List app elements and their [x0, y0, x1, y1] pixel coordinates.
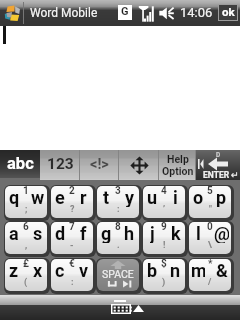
- staticText: ): [162, 277, 166, 288]
- staticText: $: [161, 259, 167, 270]
- staticText: h: [124, 223, 135, 243]
- button[interactable]: c: [51, 259, 93, 291]
- staticText: b: [147, 260, 158, 280]
- staticText: c: [55, 260, 65, 280]
- button[interactable]: z: [5, 259, 47, 291]
- staticText: abc: [7, 154, 34, 173]
- staticText: 9: [161, 222, 167, 233]
- staticText: &: [216, 260, 228, 280]
- staticText: 1: [23, 186, 29, 197]
- staticText: y: [125, 187, 135, 207]
- staticText: m: [191, 260, 205, 280]
- button[interactable]: e: [51, 186, 93, 218]
- button[interactable]: b: [143, 259, 185, 291]
- staticText: e: [55, 187, 65, 207]
- staticText: ok: [222, 5, 235, 18]
- button[interactable]: t: [97, 186, 139, 218]
- button[interactable]: Help: [159, 150, 196, 180]
- staticText: r: [80, 187, 87, 207]
- staticText: x: [33, 260, 43, 280]
- staticText: f: [80, 223, 87, 243]
- staticText: SPACE: [102, 268, 134, 280]
- staticText: n: [170, 260, 181, 280]
- staticText: 123: [47, 155, 74, 173]
- staticText: i: [173, 187, 178, 207]
- staticText: 2: [69, 186, 75, 197]
- staticText: o: [193, 187, 204, 207]
- button[interactable]: u: [143, 186, 185, 218]
- staticText: !: [163, 240, 166, 251]
- staticText: <!>: [90, 156, 109, 173]
- staticText: k: [171, 223, 181, 243]
- staticText: v: [79, 260, 89, 280]
- staticText: 7: [69, 222, 75, 233]
- staticText: 3: [115, 186, 121, 197]
- staticText: £: [23, 259, 29, 270]
- button[interactable]: GPRS: [118, 5, 132, 20]
- staticText: u: [147, 187, 158, 207]
- staticText: /: [208, 277, 212, 288]
- staticText: q: [9, 187, 20, 207]
- staticText: 6: [23, 222, 29, 233]
- staticText: ’: [163, 204, 166, 215]
- button[interactable]: abc: [0, 150, 40, 178]
- button[interactable]: <!>: [80, 150, 119, 180]
- staticText: 0: [207, 222, 213, 233]
- staticText: *: [208, 259, 213, 270]
- staticText: :: [71, 277, 74, 288]
- button[interactable]: a: [5, 222, 47, 254]
- staticText: D: [216, 151, 221, 159]
- button[interactable]: 123: [40, 150, 80, 180]
- staticText: j: [150, 223, 155, 243]
- staticText: w: [31, 187, 45, 207]
- button[interactable]: l: [189, 222, 231, 254]
- button[interactable]: q: [5, 186, 47, 218]
- button[interactable]: Input panel: [111, 299, 131, 315]
- staticText: ?: [70, 204, 75, 215]
- staticText: p: [216, 187, 227, 207]
- button[interactable]: Backspace and Enter: [196, 150, 240, 180]
- staticText: a: [9, 223, 19, 243]
- staticText: ;: [25, 204, 28, 215]
- button[interactable]: g: [97, 222, 139, 254]
- staticText: G: [121, 5, 129, 18]
- button[interactable]: Volume: [159, 7, 176, 20]
- staticText: g: [101, 223, 112, 243]
- staticText: ↵: [231, 169, 239, 180]
- staticText: s: [33, 223, 43, 243]
- staticText: d: [55, 223, 66, 243]
- staticText: Word Mobile: [30, 6, 98, 20]
- staticText: Option: [162, 165, 194, 177]
- staticText: 4: [161, 186, 167, 197]
- staticText: \: [208, 240, 212, 251]
- staticText: l: [196, 223, 201, 243]
- staticText: t: [103, 187, 110, 207]
- button[interactable]: ok: [219, 5, 237, 20]
- button[interactable]: Signal strength: [137, 5, 155, 22]
- button[interactable]: j: [143, 222, 185, 254]
- staticText: (: [24, 277, 28, 288]
- staticText: €: [69, 259, 75, 270]
- staticText: 14:06: [180, 5, 213, 20]
- button[interactable]: o: [189, 186, 231, 218]
- button[interactable]: Space: [97, 259, 139, 291]
- staticText: z: [9, 260, 19, 280]
- staticText: 5: [207, 186, 213, 197]
- button[interactable]: d: [51, 222, 93, 254]
- staticText: ,: [25, 240, 28, 251]
- staticText: :: [117, 204, 120, 215]
- staticText: ": [209, 204, 212, 215]
- button[interactable]: Move: [119, 150, 159, 180]
- staticText: @: [214, 223, 229, 243]
- staticText: .: [117, 240, 120, 251]
- staticText: 8: [115, 222, 121, 233]
- staticText: ENTER: [203, 170, 230, 180]
- staticText: -: [70, 240, 74, 251]
- button[interactable]: m: [189, 259, 231, 291]
- staticText: Help: [167, 153, 189, 165]
